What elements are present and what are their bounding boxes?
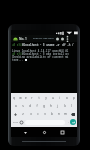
staticText: q [13, 96, 15, 100]
staticText: @localhost:~ $ pkg install py [22, 52, 69, 55]
button[interactable]: w [17, 94, 23, 102]
staticText: p [73, 96, 75, 100]
staticText: tree... [12, 58, 25, 61]
button[interactable]: x [27, 110, 34, 118]
button[interactable]: Recents [58, 128, 67, 137]
staticText: e [25, 96, 27, 100]
button[interactable]: Enter [70, 119, 76, 125]
button[interactable]: v [41, 110, 48, 118]
staticText: No. 1 [19, 37, 27, 41]
staticText: z [22, 112, 24, 116]
other: More options [56, 37, 66, 41]
staticText: n [58, 112, 60, 116]
staticText: m [64, 112, 67, 116]
other: App icon [13, 36, 18, 41]
staticText: t [38, 96, 40, 100]
staticText: x [30, 112, 32, 116]
button[interactable]: c [34, 110, 41, 118]
staticText: k [64, 104, 66, 108]
button[interactable]: r [29, 94, 35, 102]
staticText: ?123 [13, 121, 18, 124]
staticText: c [37, 112, 39, 116]
staticText: v [44, 112, 46, 116]
staticText: r [31, 96, 33, 100]
button[interactable]: m [62, 110, 69, 118]
staticText: g [43, 104, 45, 108]
button[interactable]: Emoji [19, 118, 24, 126]
button[interactable]: o [63, 94, 70, 102]
staticText: u0_a94 [12, 52, 22, 55]
staticText: . [68, 120, 69, 124]
staticText: d [29, 104, 31, 108]
staticText: b [51, 112, 53, 116]
button[interactable]: Home [40, 128, 49, 137]
staticText: y [45, 96, 47, 100]
staticText: l [71, 104, 72, 108]
button[interactable]: b [48, 110, 55, 118]
staticText: SPECIAL EDITION [33, 37, 54, 40]
button[interactable]: App icon [11, 35, 77, 42]
staticText: Linux localhost 4.14.117 aarch64 #1 [12, 49, 69, 52]
staticText: s [22, 104, 24, 108]
button[interactable]: g [40, 102, 47, 110]
button[interactable]: q [11, 94, 17, 102]
button[interactable]: a [13, 102, 19, 110]
button[interactable]: z [19, 110, 27, 118]
button[interactable]: k [61, 102, 68, 110]
staticText: a [15, 104, 17, 108]
staticText: i [59, 96, 60, 100]
button[interactable]: Back [21, 128, 30, 137]
staticText: w [19, 96, 22, 100]
staticText: u [52, 96, 54, 100]
button[interactable]: p [70, 94, 77, 102]
button[interactable]: n [55, 110, 62, 118]
staticText: j [57, 104, 58, 108]
staticText: o [66, 96, 68, 100]
button[interactable]: y [42, 94, 49, 102]
button[interactable]: Shift [11, 110, 19, 118]
staticText: h [50, 104, 52, 108]
staticText: Checking availability of current mi [12, 55, 69, 58]
button[interactable]: f [33, 102, 40, 110]
button[interactable]: j [54, 102, 61, 110]
button[interactable]: u [49, 94, 56, 102]
button[interactable]: l [68, 102, 75, 110]
button[interactable]: Backspace [69, 110, 77, 118]
button[interactable]: t [35, 94, 42, 102]
staticText: @localhost:~ $ uname -a; df -h /dat [22, 43, 76, 46]
button[interactable]: i [56, 94, 63, 102]
staticText: f [36, 104, 38, 108]
button[interactable]: s [19, 102, 26, 110]
button[interactable]: e [23, 94, 29, 102]
staticText: u0_a94 [12, 43, 22, 46]
button[interactable]: ?123 [12, 118, 19, 126]
button[interactable]: h [47, 102, 54, 110]
button[interactable]: d [26, 102, 33, 110]
button[interactable]: . [66, 118, 70, 126]
